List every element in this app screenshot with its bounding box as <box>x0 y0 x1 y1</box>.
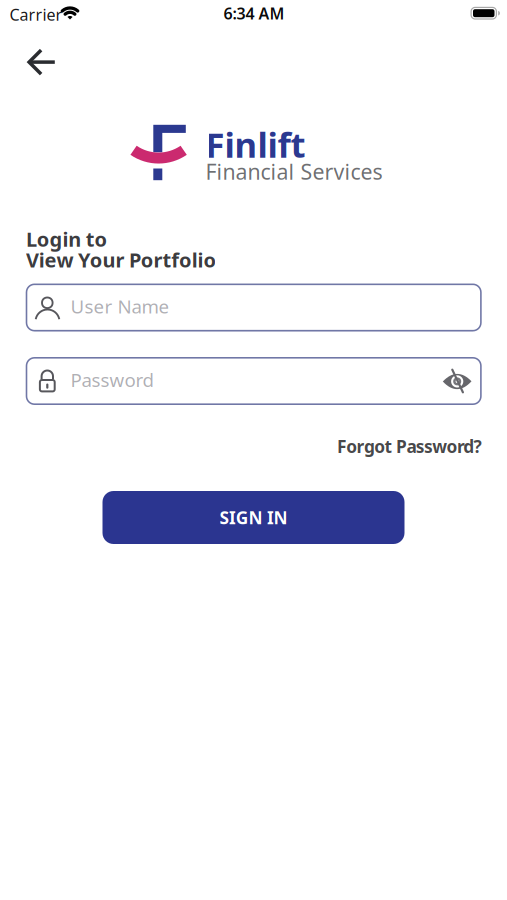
button[interactable]: SIGN IN <box>102 491 404 544</box>
staticText: User Name <box>70 294 169 319</box>
staticText: Finlift <box>205 121 305 167</box>
button[interactable]: User Name <box>26 283 482 331</box>
staticText: Forgot Password? <box>337 435 481 458</box>
button[interactable]: Forgot Password? <box>337 435 481 458</box>
staticText: 6:34 AM <box>223 3 284 24</box>
staticText: Password <box>70 367 153 392</box>
staticText: SIGN IN <box>219 506 288 529</box>
staticText: View Your Portfolio <box>26 246 216 273</box>
button[interactable]: Back <box>18 40 64 84</box>
button[interactable]: Show password <box>437 363 479 401</box>
staticText: Login to <box>26 226 108 252</box>
button[interactable]: Password <box>26 357 482 405</box>
staticText: Carrier <box>9 4 62 25</box>
staticText: Financial Services <box>205 157 382 186</box>
